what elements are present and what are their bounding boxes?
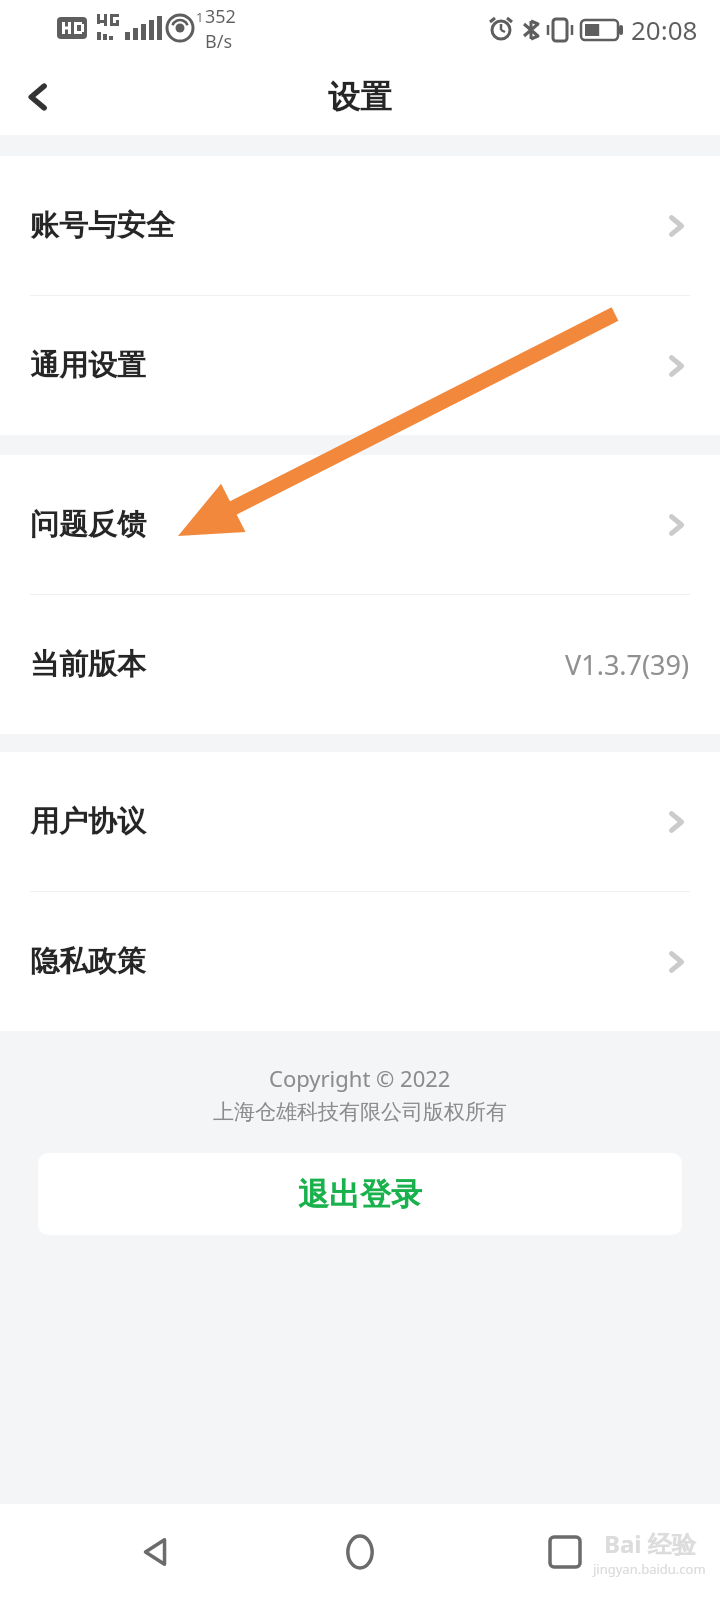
button[interactable]: 隐私政策: [0, 892, 720, 1031]
staticText: 退出登录: [298, 1175, 422, 1214]
button[interactable]: 用户协议: [0, 752, 720, 891]
staticText: 1: [196, 8, 204, 26]
staticText: Copyright © 2022: [269, 1063, 451, 1093]
staticText: 352: [205, 4, 236, 29]
button[interactable]: 账号与安全: [0, 156, 720, 295]
button[interactable]: 退出登录: [38, 1153, 682, 1235]
staticText: 当前版本: [30, 646, 146, 683]
staticText: 上海仓雄科技有限公司版权所有: [213, 1099, 507, 1125]
staticText: 通用设置: [30, 347, 146, 384]
staticText: jingyan.baidu.com: [593, 1560, 706, 1578]
button[interactable]: 当前版本: [0, 595, 720, 734]
staticText: 问题反馈: [30, 506, 146, 543]
staticText: 20:08: [631, 12, 698, 47]
staticText: 用户协议: [30, 803, 146, 840]
staticText: 隐私政策: [30, 943, 146, 980]
staticText: 设置: [328, 77, 392, 117]
button[interactable]: Back: [0, 59, 76, 135]
button[interactable]: 问题反馈: [0, 455, 720, 594]
button[interactable]: Back: [120, 1517, 190, 1587]
button[interactable]: Recents: [530, 1517, 600, 1587]
staticText: V1.3.7(39): [565, 646, 690, 683]
button[interactable]: 通用设置: [0, 296, 720, 435]
staticText: B/s: [205, 29, 233, 54]
staticText: Bai 经验: [604, 1527, 696, 1560]
staticText: 账号与安全: [30, 207, 175, 244]
button[interactable]: Home: [325, 1517, 395, 1587]
